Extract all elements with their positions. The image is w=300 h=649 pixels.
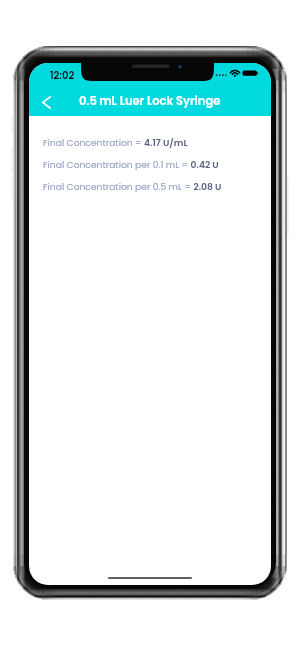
staticText: 12:02 (50, 68, 75, 82)
staticText: Final Concentration per 0.1 mL = 0.42 U (43, 158, 219, 171)
button[interactable]: Back (30, 86, 62, 118)
staticText: 0.5 mL Luer Lock Syringe (79, 93, 221, 109)
staticText: Final Concentration per 0.5 mL = 2.08 U (43, 180, 222, 193)
staticText: Final Concentration = 4.17 U/mL (43, 136, 188, 149)
